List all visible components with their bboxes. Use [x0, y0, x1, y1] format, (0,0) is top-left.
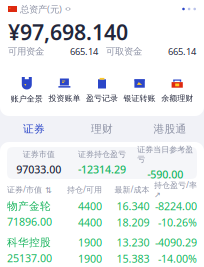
staticText: 15.383: [116, 251, 149, 266]
staticText: -4090.29: [155, 235, 197, 249]
staticText: 16.340: [116, 199, 149, 213]
staticText: 665.14: [168, 45, 196, 58]
staticText: 4400: [78, 215, 102, 229]
staticText: 理财: [91, 122, 113, 135]
staticText: 证券当日参考盈亏: [137, 145, 193, 164]
staticText: 物产金轮: [7, 199, 51, 213]
staticText: 证券市值: [23, 149, 55, 159]
staticText: -12314.29: [78, 162, 126, 176]
staticText: 71896.00: [7, 215, 52, 229]
staticText: 银证转账: [124, 93, 156, 103]
staticText: 证券持仓盈亏: [78, 149, 126, 159]
button[interactable]: 理财: [68, 122, 136, 135]
staticText: 13.230: [116, 235, 149, 249]
staticText: 证券/市值 ⇅: [7, 184, 52, 195]
button[interactable]: 账户全景: [8, 77, 46, 104]
staticText: 港股通: [153, 122, 186, 135]
button[interactable]: 盈亏记录: [83, 77, 121, 103]
staticText: 余额理财: [161, 93, 193, 103]
staticText: 总资产(元): [20, 3, 62, 15]
staticText: 可取资金: [106, 46, 142, 57]
staticText: 18.209: [116, 215, 149, 229]
staticText: 25137.00: [7, 251, 52, 265]
staticText: 665.14: [70, 45, 98, 58]
staticText: ¥97,698.140: [8, 18, 128, 46]
staticText: 97033.00: [16, 162, 61, 176]
button[interactable]: 物产金轮: [7, 199, 197, 229]
button[interactable]: 余额理财: [158, 77, 196, 103]
staticText: 投资账单: [48, 93, 80, 103]
button[interactable]: 投资账单: [46, 77, 83, 103]
staticText: 可用资金: [8, 46, 44, 57]
staticText: 账户全景: [11, 94, 43, 104]
staticText: 盈亏记录: [86, 93, 118, 103]
staticText: 证券: [23, 122, 45, 135]
button[interactable]: 科华控股: [7, 235, 197, 266]
staticText: -14.00%: [158, 251, 197, 266]
button[interactable]: 银证转账: [121, 77, 158, 103]
staticText: 4400: [78, 199, 102, 213]
button[interactable]: 证券: [0, 122, 68, 135]
button[interactable]: 港股通: [136, 122, 204, 135]
staticText: 持仓盈亏/率 ↗: [154, 180, 197, 199]
staticText: 科华控股: [7, 236, 51, 249]
staticText: -10.26%: [158, 215, 197, 229]
staticText: 1900: [78, 235, 102, 249]
staticText: -8224.00: [155, 199, 197, 213]
staticText: 最新/成本: [114, 184, 149, 195]
staticText: 1900: [78, 251, 102, 266]
staticText: -590.00: [147, 167, 183, 181]
staticText: 持仓/可用: [67, 184, 102, 195]
